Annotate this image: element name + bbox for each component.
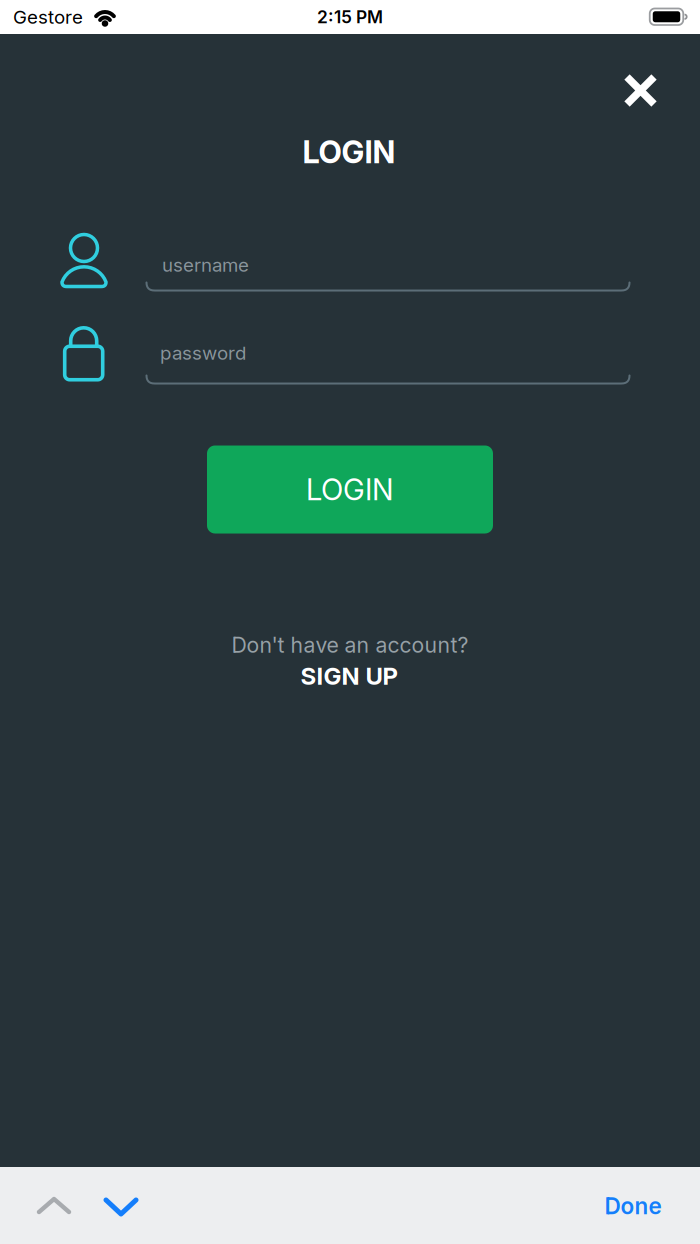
- button[interactable]: Close: [624, 74, 657, 107]
- button[interactable]: SIGN UP: [300, 662, 397, 690]
- staticText: username: [162, 254, 249, 276]
- staticText: 2:15 PM: [317, 7, 383, 27]
- button[interactable]: password: [60, 325, 632, 389]
- staticText: password: [160, 342, 246, 364]
- button[interactable]: LOGIN: [207, 445, 493, 533]
- button[interactable]: Done: [604, 1193, 661, 1219]
- staticText: SIGN UP: [300, 662, 397, 690]
- button[interactable]: Previous field: [35, 1196, 73, 1216]
- button[interactable]: username: [60, 230, 632, 294]
- staticText: Don't have an account?: [231, 632, 468, 658]
- staticText: Done: [604, 1193, 661, 1219]
- staticText: Gestore: [13, 6, 83, 28]
- staticText: LOGIN: [306, 472, 394, 507]
- button[interactable]: Next field: [102, 1197, 140, 1217]
- staticText: LOGIN: [302, 134, 395, 170]
